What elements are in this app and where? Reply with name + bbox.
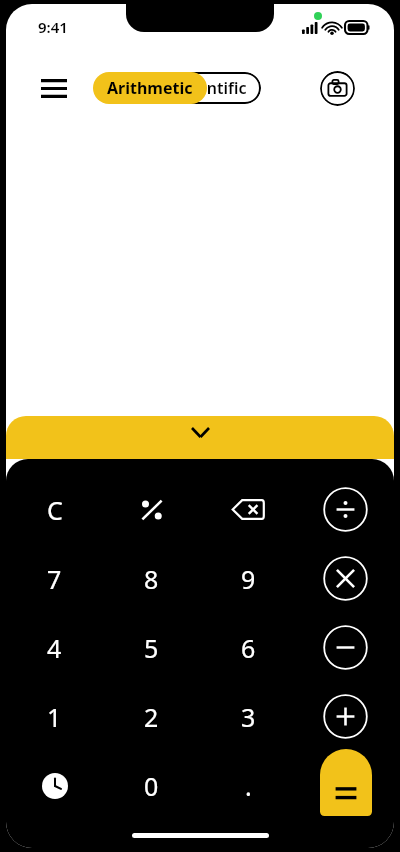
button[interactable]: 4: [6, 613, 103, 682]
button[interactable]: Arithmetic: [93, 72, 207, 104]
button[interactable]: 6: [200, 613, 297, 682]
button[interactable]: 0: [103, 751, 200, 820]
button[interactable]: Menu: [34, 68, 74, 108]
button[interactable]: 5: [103, 613, 200, 682]
button[interactable]: Add: [297, 682, 394, 751]
staticText: 6: [241, 631, 256, 665]
button[interactable]: Collapse: [6, 416, 394, 459]
staticText: = 15: [257, 740, 376, 822]
staticText: .: [245, 769, 252, 803]
staticText: 9: [241, 562, 256, 596]
button[interactable]: History: [6, 751, 103, 820]
staticText: 0: [144, 769, 159, 803]
button[interactable]: Backspace: [200, 475, 297, 544]
button[interactable]: Divide: [297, 475, 394, 544]
button[interactable]: 8: [103, 544, 200, 613]
staticText: C: [47, 493, 63, 527]
button[interactable]: 1: [6, 682, 103, 751]
button[interactable]: Camera: [320, 71, 355, 106]
staticText: 8: [144, 562, 159, 596]
staticText: Scientific: [176, 77, 247, 99]
button[interactable]: C: [6, 475, 103, 544]
staticText: 7: [47, 562, 62, 596]
staticText: 2: [144, 700, 159, 734]
button[interactable]: 7: [6, 544, 103, 613]
button[interactable]: .: [200, 751, 297, 820]
staticText: 5: [144, 631, 159, 665]
staticText: 9:41: [38, 17, 68, 37]
button[interactable]: Scientific: [162, 72, 261, 104]
staticText: 1: [47, 700, 62, 734]
staticText: Arithmetic: [107, 77, 193, 99]
staticText: 3: [241, 700, 256, 734]
button[interactable]: Equals: [320, 749, 372, 816]
button[interactable]: 2: [103, 682, 200, 751]
staticText: 9 + 6: [293, 680, 376, 730]
button[interactable]: Percent: [103, 475, 200, 544]
button[interactable]: 3: [200, 682, 297, 751]
button[interactable]: Subtract: [297, 613, 394, 682]
button[interactable]: 9: [200, 544, 297, 613]
button[interactable]: Multiply: [297, 544, 394, 613]
staticText: 4: [47, 631, 62, 665]
